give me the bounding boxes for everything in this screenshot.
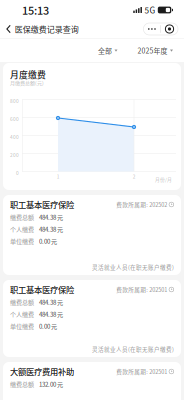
staticText: 灵活就业人员(在职无账户缴费)	[92, 345, 174, 353]
staticText: 缴费总额	[10, 213, 34, 221]
staticText: 费款所属期: 202502	[116, 200, 167, 208]
button[interactable]: 全部	[88, 41, 127, 61]
staticText: 灵活就业人员(在职无账户缴费)	[92, 263, 174, 271]
staticText: 600	[10, 115, 19, 122]
button[interactable]: 职工基本医疗保险	[3, 195, 181, 275]
staticText: 5G	[145, 4, 156, 16]
button[interactable]: 职工基本医疗保险	[3, 280, 181, 357]
button[interactable]: Close mini program	[161, 23, 178, 35]
staticText: 1	[57, 173, 60, 180]
staticText: 职工基本医疗保险	[10, 198, 74, 210]
staticText: 个人缴费	[10, 225, 34, 233]
button[interactable]: 2025年度	[127, 41, 184, 61]
staticText: 132.00 元	[39, 380, 63, 388]
staticText: 职工基本医疗保险	[10, 283, 74, 295]
staticText: 400	[10, 133, 19, 140]
staticText: 大额医疗费用补助	[10, 365, 74, 377]
staticText: 2	[133, 173, 136, 180]
staticText: 484.38 元	[39, 310, 63, 318]
staticText: 费款所属期: 202501	[116, 285, 167, 293]
staticText: 缴费总额	[10, 298, 34, 306]
staticText: 单位缴费	[10, 237, 34, 245]
staticText: 484.38 元	[39, 225, 63, 233]
staticText: 缴费总额	[10, 380, 34, 388]
staticText: 医保缴费记录查询	[15, 23, 79, 35]
staticText: 200	[10, 151, 19, 158]
staticText: 月缴费总额(元)	[10, 79, 44, 86]
staticText: 月份/月	[155, 176, 172, 183]
staticText: 个人缴费	[10, 310, 34, 318]
button[interactable]: More	[143, 23, 160, 35]
staticText: 484.38 元	[39, 298, 63, 306]
staticText: 月度缴费	[10, 68, 46, 81]
staticText: 0.00 元	[39, 237, 57, 245]
staticText: 0.00 元	[39, 322, 57, 330]
staticText: 费款所属期: 202501	[116, 367, 167, 375]
button[interactable]: 医保缴费记录查询	[0, 20, 83, 38]
staticText: 0	[16, 169, 19, 176]
staticText: 800	[10, 97, 19, 104]
staticText: 2025年度	[137, 46, 167, 56]
staticText: 全部	[98, 46, 112, 56]
button[interactable]: 大额医疗费用补助	[3, 362, 181, 400]
staticText: 单位缴费	[10, 322, 34, 330]
staticText: 15:13	[22, 2, 49, 18]
staticText: 484.38 元	[39, 213, 63, 221]
